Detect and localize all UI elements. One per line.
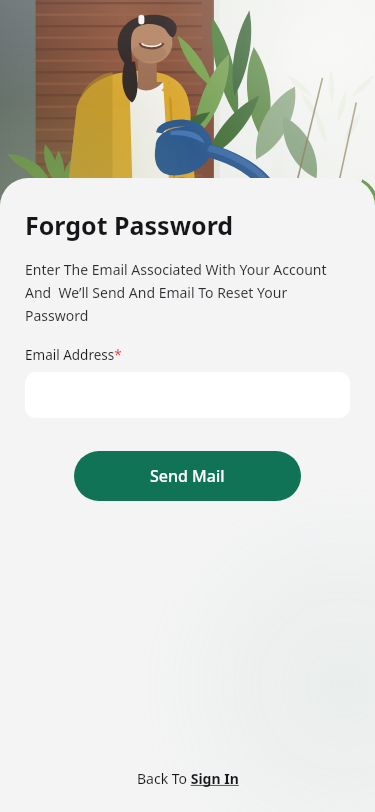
staticText: Send Mail [150,465,225,487]
button[interactable]: Send Mail [74,451,301,501]
staticText: Back To Sign In [137,769,239,788]
staticText: Email Address* [25,346,122,364]
button[interactable]: Back To Sign In [127,763,249,794]
staticText: Forgot Password [25,208,234,242]
staticText: Enter The Email Associated With Your Acc… [25,260,345,325]
